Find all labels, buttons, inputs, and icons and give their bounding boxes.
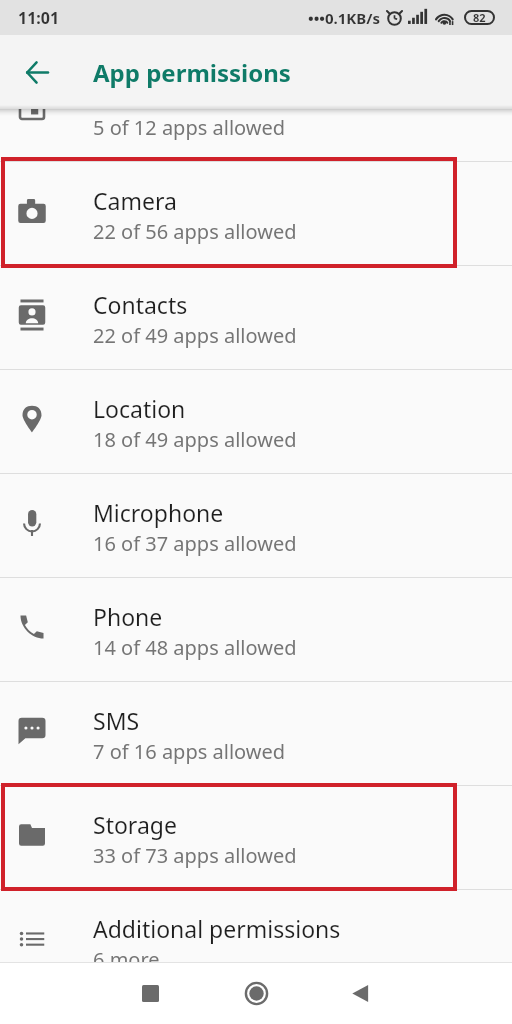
staticText: Phone <box>93 601 163 632</box>
button[interactable]: Home <box>232 969 280 1017</box>
staticText: Storage <box>93 809 177 840</box>
staticText: 18 of 49 apps allowed <box>93 426 297 453</box>
staticText: 22 of 56 apps allowed <box>93 218 297 245</box>
staticText: Contacts <box>93 289 188 320</box>
button[interactable]: Location <box>0 369 512 473</box>
staticText: 82 <box>473 10 486 25</box>
staticText: 14 of 48 apps allowed <box>93 634 297 661</box>
button[interactable]: Back <box>13 48 61 96</box>
staticText: 11:01 <box>18 7 60 29</box>
button[interactable]: SMS <box>0 681 512 785</box>
button[interactable]: Back <box>336 969 384 1017</box>
staticText: 5 of 12 apps allowed <box>93 114 286 141</box>
button[interactable]: Microphone <box>0 473 512 577</box>
button[interactable]: Recent apps <box>126 969 174 1017</box>
staticText: Calendar <box>93 109 191 112</box>
staticText: Microphone <box>93 497 224 528</box>
staticText: Location <box>93 393 186 424</box>
staticText: Additional permissions <box>93 913 341 944</box>
staticText: 33 of 73 apps allowed <box>93 842 297 869</box>
staticText: 16 of 37 apps allowed <box>93 530 297 557</box>
staticText: Camera <box>93 185 177 216</box>
button[interactable]: Contacts <box>0 265 512 369</box>
staticText: 6 more <box>93 946 160 964</box>
button[interactable]: Phone <box>0 577 512 681</box>
staticText: 22 of 49 apps allowed <box>93 322 297 349</box>
staticText: SMS <box>93 705 140 736</box>
button[interactable]: Calendar <box>0 109 512 161</box>
staticText: 7 of 16 apps allowed <box>93 738 286 765</box>
staticText: App permissions <box>93 56 291 89</box>
staticText: •••0.1KB/s <box>308 8 380 28</box>
button[interactable]: Storage <box>0 785 512 889</box>
button[interactable]: Additional permissions <box>0 889 512 964</box>
button[interactable]: Camera <box>0 161 512 265</box>
